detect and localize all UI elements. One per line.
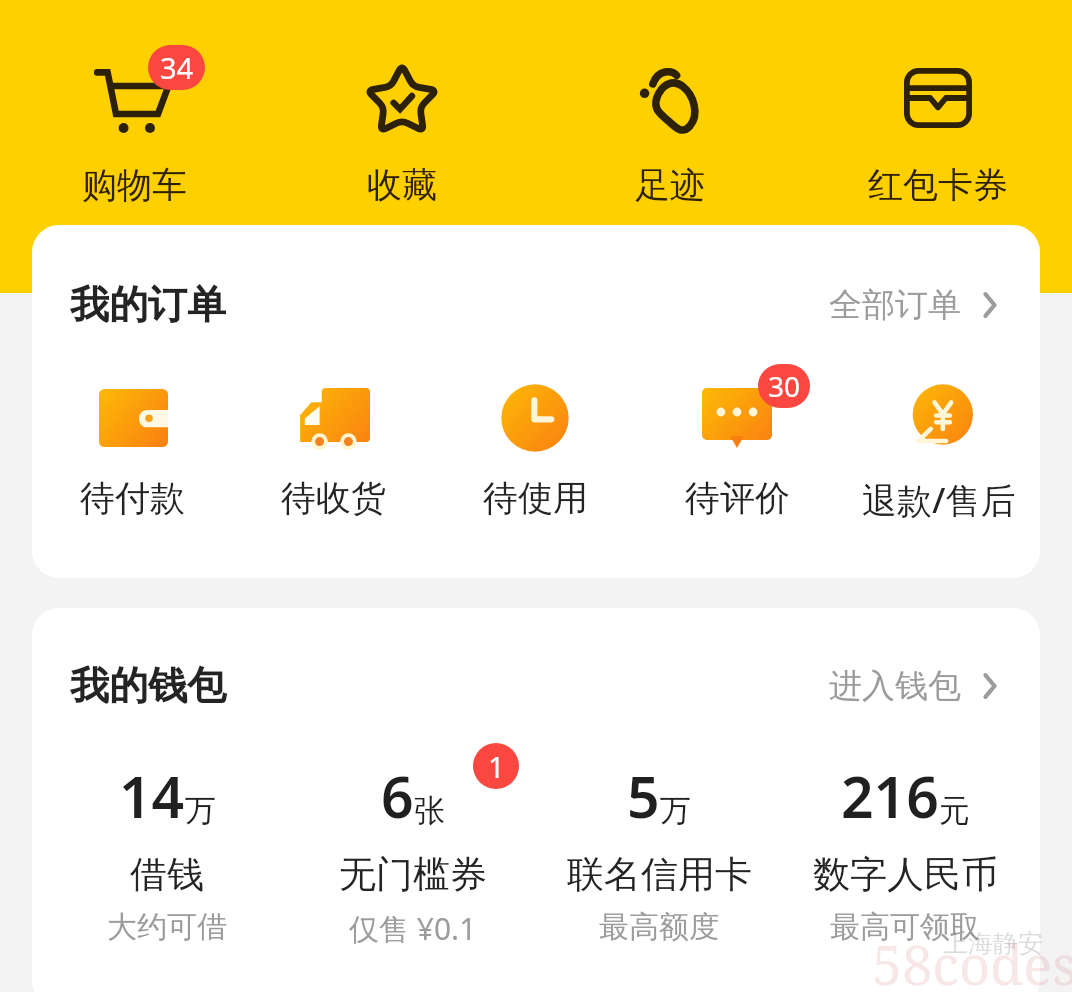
button[interactable]: To review xyxy=(636,382,838,520)
staticText: 仅售 ¥0.1 xyxy=(349,908,477,949)
button[interactable]: Refund and after-sales xyxy=(838,382,1040,524)
button[interactable]: To use xyxy=(434,382,636,520)
staticText: 待收货 xyxy=(281,476,386,520)
staticText: 借钱 xyxy=(130,851,204,898)
staticText: 进入钱包 xyxy=(829,665,961,707)
staticText: 万 xyxy=(185,791,216,830)
button[interactable]: 全部订单 xyxy=(829,284,996,326)
other: Coupons xyxy=(904,68,972,128)
other: To use xyxy=(501,384,569,452)
staticText: 红包卡券 xyxy=(868,163,1008,207)
other: To review xyxy=(702,388,772,448)
button[interactable]: 进入钱包 xyxy=(829,665,996,707)
staticText: 全部订单 xyxy=(829,284,961,326)
other: To pay xyxy=(99,389,168,447)
button[interactable]: To receive xyxy=(233,382,434,520)
other: Shopping cart xyxy=(94,58,174,138)
staticText: 张 xyxy=(414,791,445,830)
button[interactable]: 5 xyxy=(536,757,782,946)
staticText: 大约可借 xyxy=(107,908,227,946)
other: Refund and after-sales xyxy=(906,385,973,452)
staticText: 我的钱包 xyxy=(70,661,226,710)
button[interactable]: 6 xyxy=(290,757,536,949)
staticText: 34 xyxy=(160,48,194,87)
other: To receive xyxy=(298,386,370,451)
staticText: 退款/售后 xyxy=(862,476,1016,524)
staticText: 5 xyxy=(627,757,660,835)
button[interactable]: To pay xyxy=(32,382,233,520)
staticText: 待使用 xyxy=(483,476,588,520)
staticText: 14 xyxy=(119,757,185,835)
staticText: 我的订单 xyxy=(70,280,226,329)
staticText: 6 xyxy=(381,757,414,835)
button[interactable]: 216 xyxy=(782,757,1028,946)
staticText: 最高额度 xyxy=(599,908,719,946)
staticText: 联名信用卡 xyxy=(567,851,752,898)
staticText: 216 xyxy=(841,757,939,835)
button[interactable]: 14 xyxy=(44,757,290,946)
staticText: 30 xyxy=(768,367,801,405)
other: Browsing history xyxy=(637,59,703,137)
staticText: 元 xyxy=(939,791,970,830)
staticText: 无门槛券 xyxy=(339,851,487,898)
staticText: 待评价 xyxy=(685,476,790,520)
staticText: 待付款 xyxy=(80,476,185,520)
staticText: 数字人民币 xyxy=(813,851,998,898)
staticText: 万 xyxy=(660,791,691,830)
staticText: 收藏 xyxy=(367,163,437,207)
button[interactable]: Browsing history xyxy=(536,0,804,207)
other: Favorites xyxy=(362,58,442,138)
button[interactable]: Coupons xyxy=(804,0,1072,207)
staticText: 足迹 xyxy=(635,163,705,207)
button[interactable]: Favorites xyxy=(268,0,536,207)
staticText: 58codes xyxy=(872,927,1072,992)
button[interactable]: Shopping cart xyxy=(0,0,268,207)
staticText: 购物车 xyxy=(82,163,187,207)
staticText: 最高可领取 xyxy=(830,908,980,946)
staticText: 上海静安 xyxy=(943,928,1043,959)
staticText: 1 xyxy=(488,747,505,786)
